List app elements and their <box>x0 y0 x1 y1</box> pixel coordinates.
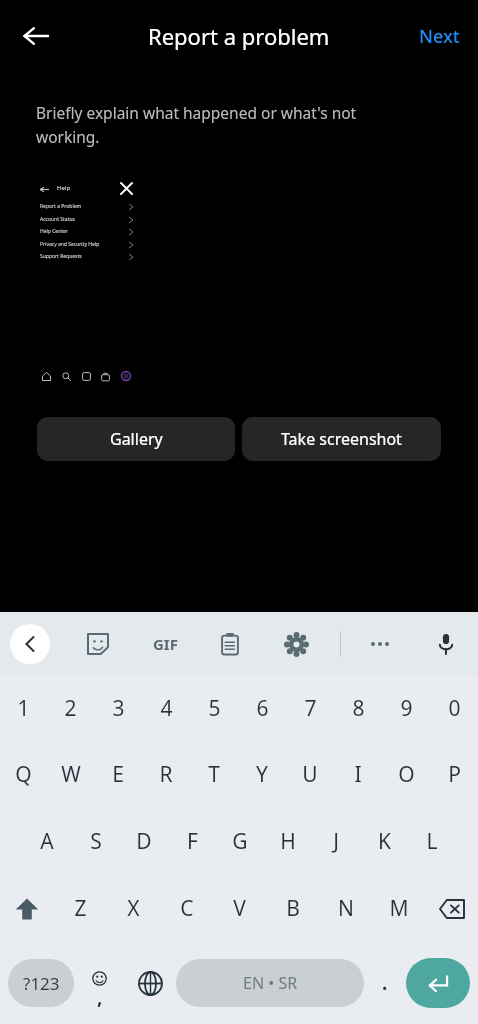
button[interactable]: 0 <box>430 675 478 741</box>
staticText: M <box>389 894 409 923</box>
button[interactable]: Emoji <box>74 955 124 1011</box>
staticText: 6 <box>256 694 269 723</box>
button[interactable]: 6 <box>238 675 286 741</box>
button[interactable]: L <box>408 808 456 875</box>
button[interactable]: ?123 <box>8 959 74 1007</box>
staticText: 7 <box>304 694 317 723</box>
button[interactable]: I <box>334 741 382 808</box>
button[interactable]: T <box>190 741 238 808</box>
button[interactable]: M <box>372 875 425 942</box>
button[interactable]: Stickers <box>78 624 118 664</box>
button[interactable]: EN • SR <box>176 959 364 1007</box>
staticText: N <box>338 894 354 923</box>
staticText: 4 <box>160 694 173 723</box>
staticText: Briefly explain what happened or what's … <box>36 102 357 147</box>
staticText: J <box>333 827 339 856</box>
staticText: Privacy and Security Help <box>40 241 100 248</box>
staticText: I <box>354 760 362 789</box>
button[interactable]: Z <box>54 875 107 942</box>
button[interactable]: 1 <box>0 675 47 741</box>
button[interactable]: V <box>213 875 266 942</box>
button[interactable]: Next <box>411 18 468 55</box>
staticText: EN • SR <box>243 972 298 994</box>
button[interactable]: Backspace <box>425 875 478 942</box>
staticText: 8 <box>352 694 365 723</box>
button[interactable]: R <box>142 741 190 808</box>
staticText: P <box>448 760 461 789</box>
staticText: 0 <box>448 694 461 723</box>
button[interactable]: D <box>120 808 168 875</box>
button[interactable]: Screenshot preview <box>36 175 137 393</box>
button[interactable]: S <box>71 808 120 875</box>
button[interactable]: W <box>47 741 94 808</box>
button[interactable]: Y <box>238 741 286 808</box>
staticText: O <box>398 760 415 789</box>
button[interactable]: 8 <box>334 675 382 741</box>
staticText: L <box>426 827 438 856</box>
button[interactable]: E <box>94 741 142 808</box>
button[interactable]: C <box>160 875 213 942</box>
button[interactable]: Settings <box>276 624 316 664</box>
staticText: GIF <box>153 634 178 654</box>
button[interactable]: 2 <box>47 675 94 741</box>
button[interactable]: Change language <box>124 955 176 1011</box>
staticText: 2 <box>64 694 77 723</box>
button[interactable]: Enter <box>406 958 470 1008</box>
button[interactable]: 9 <box>382 675 430 741</box>
staticText: B <box>286 894 300 923</box>
staticText: C <box>180 894 194 923</box>
staticText: U <box>302 760 318 789</box>
staticText: 5 <box>208 694 221 723</box>
staticText: R <box>159 760 173 789</box>
button[interactable]: U <box>286 741 334 808</box>
staticText: Z <box>74 894 87 923</box>
button[interactable]: P <box>430 741 478 808</box>
staticText: Help <box>57 184 71 192</box>
staticText: , <box>97 984 103 1010</box>
staticText: Report a Problem <box>40 203 82 210</box>
staticText: Gallery <box>110 428 163 450</box>
button[interactable]: 4 <box>142 675 190 741</box>
button[interactable]: 5 <box>190 675 238 741</box>
button[interactable]: 7 <box>286 675 334 741</box>
staticText: Take screenshot <box>281 428 402 450</box>
button[interactable]: O <box>382 741 430 808</box>
staticText: D <box>136 827 152 856</box>
staticText: 9 <box>400 694 413 723</box>
staticText: Support Requests <box>40 253 82 260</box>
button[interactable]: More options <box>360 624 400 664</box>
button[interactable]: G <box>216 808 264 875</box>
staticText: F <box>187 827 198 856</box>
staticText: Next <box>419 24 460 49</box>
staticText: Help Center <box>40 228 68 235</box>
button[interactable]: A <box>22 808 71 875</box>
button[interactable]: . <box>364 955 406 1011</box>
button[interactable]: Q <box>0 741 47 808</box>
button[interactable]: Back <box>10 10 62 62</box>
button[interactable]: J <box>312 808 360 875</box>
button[interactable]: Take screenshot <box>242 417 441 461</box>
button[interactable]: X <box>107 875 160 942</box>
staticText: H <box>280 827 296 856</box>
staticText: V <box>233 894 246 923</box>
staticText: K <box>378 827 391 856</box>
button[interactable]: N <box>319 875 372 942</box>
button[interactable]: 3 <box>94 675 142 741</box>
button[interactable]: Gallery <box>37 417 235 461</box>
button[interactable]: B <box>266 875 319 942</box>
button[interactable]: H <box>264 808 312 875</box>
staticText: Y <box>256 760 268 789</box>
staticText: Account Status <box>40 216 75 223</box>
button[interactable]: GIF <box>143 622 187 666</box>
staticText: . <box>382 970 388 996</box>
button[interactable]: K <box>360 808 408 875</box>
button[interactable]: Shift <box>0 875 54 942</box>
button[interactable]: F <box>168 808 216 875</box>
staticText: T <box>208 760 220 789</box>
button[interactable]: Voice input <box>426 624 466 664</box>
button[interactable]: Clipboard <box>210 624 250 664</box>
staticText: Q <box>15 760 32 789</box>
staticText: G <box>232 827 248 856</box>
staticText: 1 <box>17 694 30 723</box>
button[interactable]: Back <box>10 624 50 664</box>
